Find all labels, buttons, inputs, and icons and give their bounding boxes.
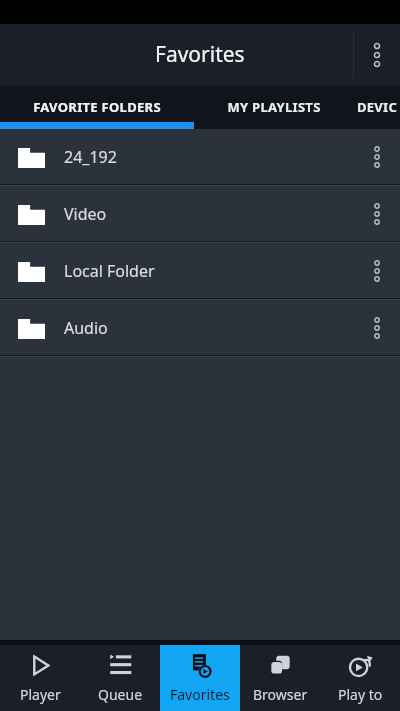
- button[interactable]: Audio: [0, 300, 400, 355]
- staticText: Browser: [253, 685, 308, 704]
- button[interactable]: Item options: [354, 129, 400, 184]
- staticText: Favorites: [155, 40, 245, 69]
- button[interactable]: Video: [0, 186, 400, 241]
- button[interactable]: 24_192: [0, 129, 400, 184]
- staticText: Local Folder: [64, 260, 354, 282]
- staticText: MY PLAYLISTS: [227, 98, 321, 116]
- staticText: 24_192: [64, 146, 354, 168]
- button[interactable]: Play to: [320, 645, 400, 711]
- button[interactable]: FAVORITE FOLDERS: [0, 85, 194, 129]
- button[interactable]: Local Folder: [0, 243, 400, 298]
- button[interactable]: MY PLAYLISTS: [194, 85, 354, 129]
- button[interactable]: More options: [354, 24, 400, 85]
- button[interactable]: Player: [0, 645, 80, 711]
- button[interactable]: Item options: [354, 186, 400, 241]
- button[interactable]: Favorites: [160, 645, 240, 711]
- button[interactable]: Queue: [80, 645, 160, 711]
- staticText: Queue: [98, 685, 143, 704]
- staticText: DEVICES: [354, 98, 400, 116]
- staticText: Play to: [338, 685, 383, 704]
- staticText: Audio: [64, 317, 354, 339]
- button[interactable]: DEVICES: [354, 85, 400, 129]
- button[interactable]: Item options: [354, 300, 400, 355]
- staticText: Favorites: [170, 685, 230, 704]
- staticText: FAVORITE FOLDERS: [33, 98, 161, 116]
- button[interactable]: Item options: [354, 243, 400, 298]
- staticText: Player: [20, 685, 61, 704]
- button[interactable]: Browser: [240, 645, 320, 711]
- staticText: Video: [64, 203, 354, 225]
